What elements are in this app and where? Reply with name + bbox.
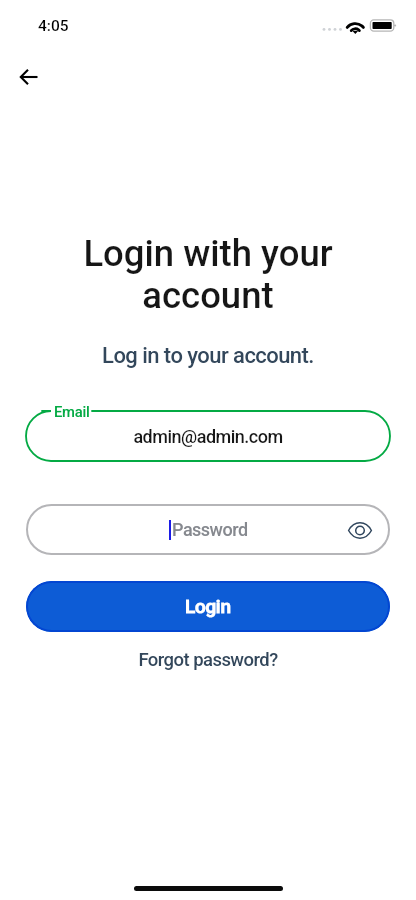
- button[interactable]: Show password: [345, 515, 375, 545]
- button[interactable]: Forgot password?: [0, 647, 416, 673]
- button[interactable]: Back: [9, 57, 49, 97]
- staticText: Login: [185, 596, 231, 618]
- staticText: admin@admin.com: [26, 426, 390, 447]
- staticText: Email: [54, 403, 90, 420]
- staticText: Password: [172, 519, 248, 540]
- button[interactable]: Login: [26, 581, 390, 632]
- staticText: Log in to your account.: [0, 343, 416, 369]
- staticText: 4:05: [38, 17, 69, 35]
- staticText: Login with your account: [36, 232, 380, 317]
- button[interactable]: Password: [26, 504, 390, 555]
- button[interactable]: Email: [26, 400, 390, 462]
